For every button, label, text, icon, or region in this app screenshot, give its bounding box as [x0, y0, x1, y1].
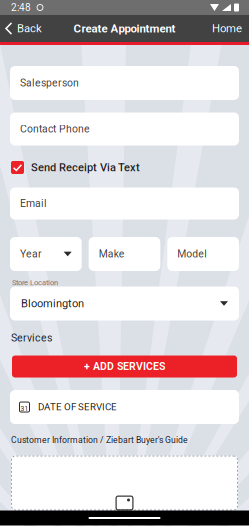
button[interactable]: Send Receipt Via Text — [0, 156, 249, 178]
staticText: Send Receipt Via Text — [31, 161, 140, 174]
button[interactable]: Year — [10, 237, 82, 271]
staticText: Customer Information / Ziebart Buyer's G… — [11, 435, 188, 445]
staticText: 2:48 — [11, 2, 31, 13]
button[interactable]: 31 — [10, 390, 239, 424]
button[interactable]: Salesperson — [10, 66, 239, 100]
staticText: Model — [177, 248, 207, 260]
staticText: + ADD SERVICES — [84, 360, 165, 373]
button[interactable]: Upload photo — [11, 455, 238, 510]
staticText: Year — [20, 248, 42, 260]
staticText: Contact Phone — [20, 123, 90, 135]
staticText: DATE OF SERVICE — [38, 401, 117, 413]
staticText: Store Location — [12, 278, 58, 287]
staticText: 31 — [20, 405, 28, 413]
button[interactable]: Bloomington — [10, 286, 239, 320]
staticText: Bloomington — [21, 297, 84, 310]
staticText: Make — [99, 248, 125, 260]
button[interactable]: Contact Phone — [10, 112, 239, 145]
staticText: Home — [212, 22, 242, 35]
button[interactable]: Model — [167, 237, 239, 271]
button[interactable]: Make — [89, 237, 160, 271]
staticText: Salesperson — [20, 77, 79, 89]
button[interactable]: Home — [212, 15, 249, 42]
staticText: Back — [17, 22, 42, 35]
staticText: Email — [20, 197, 47, 210]
button[interactable]: Email — [10, 187, 239, 219]
button[interactable]: + ADD SERVICES — [12, 355, 237, 377]
staticText: Create Appointment — [73, 22, 175, 35]
button[interactable]: Back — [0, 15, 42, 42]
staticText: Services — [11, 332, 52, 344]
